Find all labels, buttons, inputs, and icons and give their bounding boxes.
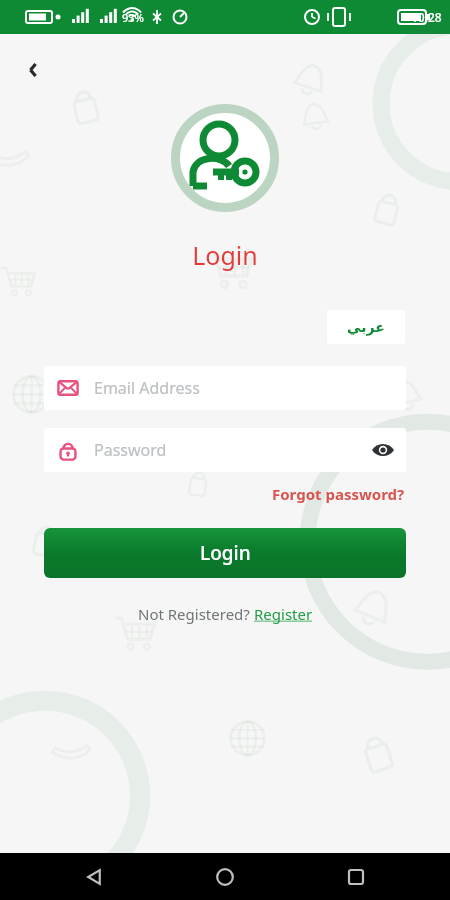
button[interactable]: عربي [327,310,405,344]
button[interactable]: Login [44,528,406,578]
staticText: Password [94,439,167,461]
button[interactable]: Register [254,604,313,624]
staticText: Register [254,604,313,624]
staticText: 93% [122,10,144,25]
staticText: Not Registered? [138,604,254,624]
button[interactable]: Show password [364,431,402,469]
button[interactable]: Home [205,857,245,897]
button[interactable]: Recents [336,857,376,897]
button[interactable]: Back [74,857,114,897]
staticText: عربي [347,319,385,335]
button[interactable]: Password [44,428,406,472]
staticText: Forgot password? [272,484,405,504]
button[interactable]: Email Address [44,366,406,410]
staticText: Login [200,540,251,566]
staticText: Login [192,238,258,272]
button[interactable]: Back [14,50,54,90]
staticText: 10:28 [411,9,442,25]
staticText: Email Address [94,377,200,399]
button[interactable]: Forgot password? [272,484,405,504]
